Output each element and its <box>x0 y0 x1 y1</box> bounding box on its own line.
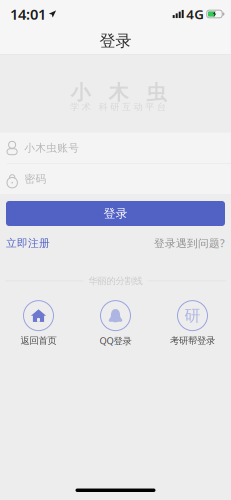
staticText: 学术 科研互动平台 <box>70 101 166 113</box>
button[interactable]: 登录遇到问题? <box>154 236 225 250</box>
staticText: 登录 <box>103 206 127 221</box>
staticText: 14:01 <box>10 4 46 24</box>
staticText: 4G <box>186 5 204 23</box>
staticText: 小木虫账号 <box>24 141 79 154</box>
button[interactable]: 登录 <box>6 201 225 226</box>
staticText: 密码 <box>25 172 47 185</box>
staticText: QQ登录 <box>99 334 131 347</box>
staticText: 登录 <box>99 31 131 51</box>
button[interactable]: 返回首页 <box>0 301 77 347</box>
staticText: 考研帮登录 <box>170 335 215 346</box>
staticText: 返回首页 <box>20 335 56 346</box>
staticText: 华丽的分割线 <box>88 275 142 287</box>
staticText: 登录遇到问题? <box>154 236 225 250</box>
staticText: 立即注册 <box>6 236 50 250</box>
staticText: 研 <box>184 306 200 325</box>
staticText: 小木虫 <box>70 80 166 105</box>
button[interactable]: 立即注册 <box>6 236 50 250</box>
button[interactable]: 研 <box>154 301 231 347</box>
button[interactable]: QQ登录 <box>77 301 154 347</box>
